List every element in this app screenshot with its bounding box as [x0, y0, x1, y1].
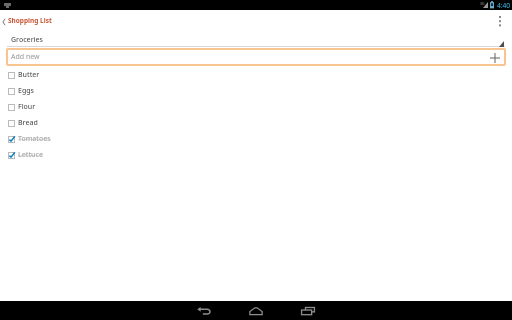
- staticText: Tomatoes: [18, 134, 51, 144]
- button[interactable]: Tomatoes: [0, 131, 512, 147]
- staticText: 4:40: [497, 1, 511, 10]
- staticText: Bread: [18, 118, 38, 128]
- staticText: Butter: [18, 70, 40, 80]
- staticText: Shopping List: [8, 16, 52, 25]
- button[interactable]: Eggs: [0, 83, 512, 99]
- button[interactable]: Butter: [0, 67, 512, 83]
- staticText: Add new: [11, 52, 40, 62]
- button[interactable]: More options: [490, 11, 510, 31]
- button[interactable]: Lettuce: [0, 147, 512, 163]
- staticText: Eggs: [18, 86, 34, 96]
- button[interactable]: Back: [190, 301, 220, 320]
- button[interactable]: Recent apps: [293, 301, 323, 320]
- button[interactable]: Bread: [0, 115, 512, 131]
- button[interactable]: Flour: [0, 99, 512, 115]
- staticText: Groceries: [11, 35, 43, 45]
- staticText: 3G: [480, 1, 485, 6]
- button[interactable]: Add new: [6, 48, 506, 66]
- button[interactable]: Shopping List: [0, 12, 58, 29]
- button[interactable]: Home: [241, 301, 271, 320]
- staticText: Flour: [18, 102, 36, 112]
- staticText: Lettuce: [18, 150, 43, 160]
